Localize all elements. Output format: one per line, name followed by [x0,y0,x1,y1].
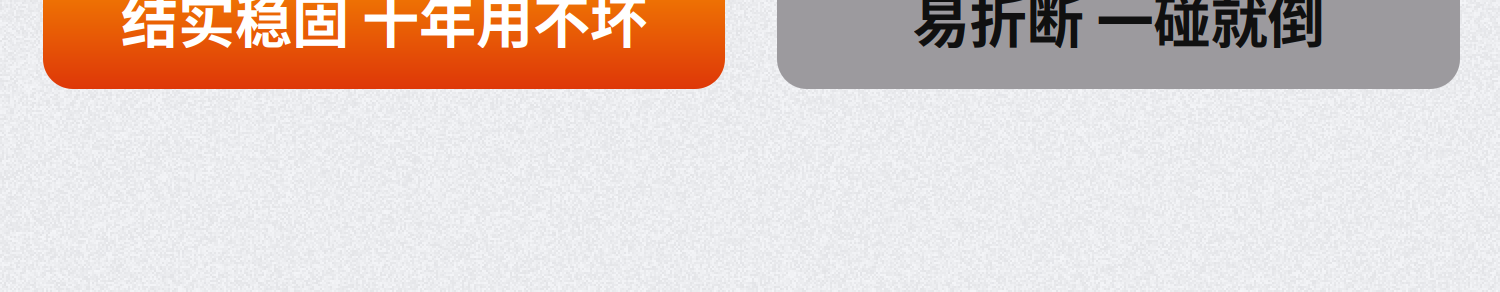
staticText: 结实稳固 十年用不坏 [121,0,647,59]
button[interactable]: 易折断 一碰就倒 [777,0,1460,89]
staticText: 易折断 一碰就倒 [912,0,1324,59]
button[interactable]: 结实稳固 十年用不坏 [43,0,725,89]
